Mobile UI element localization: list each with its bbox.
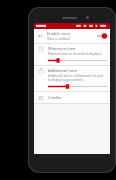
button[interactable]: Slider: [48, 84, 107, 89]
button[interactable]: Additional time: [34, 66, 110, 91]
staticText: Additional time: [48, 68, 77, 73]
staticText: Enable voice: [47, 31, 71, 36]
button[interactable]: Slider: [48, 58, 107, 63]
staticText: Minimum time in seconds to display a num…: [48, 52, 107, 56]
staticText: Minimum time: [48, 46, 76, 51]
button[interactable]: Enable voice: [34, 29, 110, 43]
staticText: Voice is enabled: [47, 37, 70, 41]
staticText: to display large numbers.: [48, 78, 84, 82]
staticText: Additional time in milliseconds for each…: [48, 74, 107, 78]
button[interactable]: Minimum time: [34, 44, 110, 65]
staticText: Credits: [48, 95, 62, 100]
button[interactable]: Toggle voice: [97, 32, 107, 40]
button[interactable]: Credits: [34, 92, 110, 103]
